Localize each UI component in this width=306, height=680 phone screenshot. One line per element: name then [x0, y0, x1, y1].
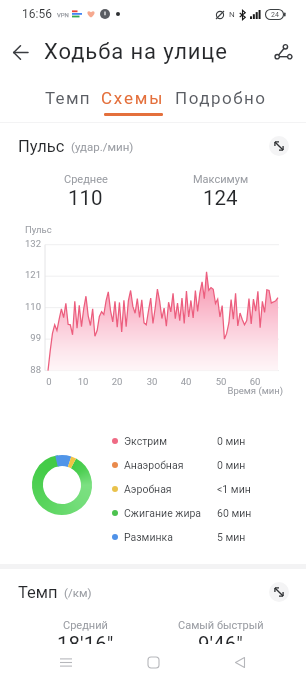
staticText: 132	[9, 238, 41, 249]
staticText: Пульс	[25, 224, 52, 235]
staticText: 60 мин	[217, 507, 252, 519]
staticText: Схемы	[101, 88, 165, 108]
button[interactable]: Home	[132, 644, 174, 680]
staticText: 18'16"	[57, 632, 114, 656]
staticText: Средний	[63, 619, 108, 632]
staticText: Пульс	[18, 137, 65, 156]
button[interactable]: Back	[219, 644, 261, 680]
staticText: Анаэробная	[124, 459, 184, 471]
staticText: 0 мин	[217, 459, 246, 471]
staticText: Максимум	[193, 173, 249, 186]
staticText: 99	[9, 332, 41, 343]
staticText: Сжигание жира	[124, 507, 202, 519]
button[interactable]: Expand chart	[269, 582, 289, 602]
staticText: N	[229, 10, 235, 19]
staticText: Самый быстрый	[178, 619, 264, 632]
staticText: 110	[9, 301, 41, 312]
button[interactable]: Схемы	[96, 76, 170, 118]
staticText: 5 мин	[217, 531, 246, 543]
staticText: <1 мин	[217, 483, 251, 495]
staticText: Темп	[45, 88, 91, 108]
staticText: Аэробная	[124, 483, 172, 495]
button[interactable]: Подробно	[170, 76, 273, 122]
button[interactable]: Recents	[45, 644, 87, 680]
button[interactable]: Back	[6, 38, 34, 66]
staticText: 20	[103, 376, 131, 387]
staticText: Темп	[18, 583, 58, 602]
staticText: 124	[203, 186, 238, 210]
staticText: 121	[9, 269, 41, 280]
button[interactable]: Expand chart	[269, 136, 289, 156]
staticText: (/км)	[64, 586, 92, 599]
staticText: Подробно	[175, 88, 267, 108]
staticText: 60	[241, 376, 269, 387]
staticText: 24	[271, 11, 279, 19]
staticText: VPN	[57, 11, 69, 18]
staticText: 50	[207, 376, 235, 387]
staticText: 16:56	[22, 7, 52, 21]
staticText: 0 мин	[217, 435, 246, 447]
button[interactable]: Темп	[39, 76, 96, 122]
staticText: Разминка	[124, 531, 173, 543]
button[interactable]: Share	[269, 38, 297, 66]
staticText: 30	[138, 376, 166, 387]
staticText: Ходьба на улице	[44, 39, 228, 65]
staticText: 110	[68, 186, 103, 210]
staticText: 9'46"	[198, 632, 243, 656]
staticText: 88	[9, 364, 41, 375]
staticText: Время (мин)	[205, 385, 283, 396]
staticText: 10	[69, 376, 97, 387]
staticText: Экстрим	[124, 435, 167, 447]
staticText: Среднее	[64, 173, 108, 186]
staticText: (удар./мин)	[71, 140, 134, 153]
staticText: 40	[172, 376, 200, 387]
staticText: 0	[35, 376, 63, 387]
